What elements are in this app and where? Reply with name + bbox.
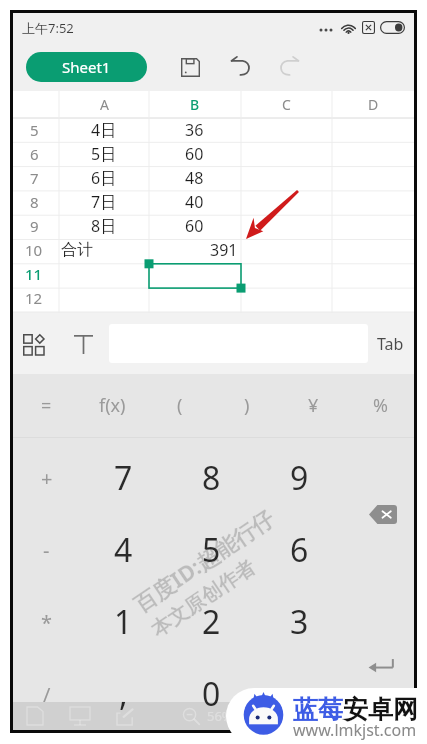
- staticText: 上午7:52: [22, 19, 74, 37]
- button[interactable]: %: [347, 374, 414, 437]
- staticText: Sheet1: [62, 57, 111, 77]
- staticText: (: [177, 393, 183, 418]
- button[interactable]: 3: [255, 586, 343, 658]
- button[interactable]: 8: [167, 442, 255, 514]
- button[interactable]: B: [149, 91, 241, 118]
- button[interactable]: Undo: [223, 50, 257, 84]
- staticText: ): [244, 393, 250, 418]
- button[interactable]: ,: [80, 658, 167, 730]
- staticText: 391: [210, 239, 238, 261]
- staticText: 5: [202, 528, 221, 572]
- staticText: 7: [30, 168, 39, 188]
- button[interactable]: =: [13, 374, 79, 437]
- button[interactable]: 1: [80, 586, 167, 658]
- staticText: 6: [30, 144, 39, 164]
- staticText: B: [190, 95, 200, 114]
- staticText: -: [43, 537, 50, 564]
- staticText: 4日: [91, 119, 117, 141]
- button[interactable]: Sheet1: [26, 52, 147, 82]
- staticText: ¥: [308, 393, 319, 418]
- button[interactable]: Backspace: [343, 442, 414, 586]
- button[interactable]: f(x): [79, 374, 146, 437]
- button[interactable]: Redo: [273, 50, 307, 84]
- button[interactable]: /: [13, 658, 80, 730]
- staticText: 8日: [91, 215, 117, 237]
- button[interactable]: 9: [255, 442, 343, 514]
- staticText: www.lmkjst.com: [293, 719, 417, 741]
- staticText: Tab: [377, 333, 404, 355]
- staticText: 安卓网: [343, 694, 418, 725]
- staticText: D: [368, 95, 379, 114]
- staticText: 2: [202, 600, 221, 644]
- staticText: A: [100, 95, 109, 114]
- staticText: C: [282, 95, 291, 114]
- button[interactable]: Text format: [68, 329, 98, 359]
- staticText: 6: [290, 528, 309, 572]
- staticText: 蓝莓: [293, 694, 343, 725]
- staticText: 9: [290, 456, 309, 500]
- button[interactable]: 0: [167, 658, 255, 730]
- staticText: 3: [290, 600, 309, 644]
- staticText: 本文原创作者: [146, 555, 260, 642]
- staticText: 60: [185, 215, 204, 237]
- button[interactable]: Enter: [343, 586, 414, 730]
- staticText: 4: [114, 528, 133, 572]
- staticText: *: [41, 609, 53, 636]
- button[interactable]: 7: [80, 442, 167, 514]
- button[interactable]: *: [13, 586, 80, 658]
- button[interactable]: C: [241, 91, 332, 118]
- staticText: 7: [114, 456, 133, 500]
- staticText: .: [295, 672, 304, 716]
- button[interactable]: ): [213, 374, 280, 437]
- button[interactable]: Save: [173, 50, 207, 84]
- staticText: 5日: [91, 143, 117, 165]
- staticText: =: [41, 393, 52, 418]
- staticText: ,: [119, 672, 128, 716]
- button[interactable]: ¥: [280, 374, 347, 437]
- button[interactable]: File: [21, 702, 49, 730]
- staticText: 48: [185, 167, 204, 189]
- button[interactable]: 5: [167, 514, 255, 586]
- staticText: 5: [30, 120, 39, 140]
- staticText: /: [43, 681, 51, 708]
- staticText: f(x): [99, 393, 126, 418]
- button[interactable]: Zoom: [177, 702, 205, 730]
- staticText: 10: [25, 240, 43, 260]
- button[interactable]: Share: [112, 702, 140, 730]
- button[interactable]: +: [13, 442, 80, 514]
- button[interactable]: Cell styles: [18, 329, 48, 359]
- staticText: 11: [25, 264, 43, 284]
- button[interactable]: A: [59, 91, 149, 118]
- button[interactable]: .: [255, 658, 343, 730]
- staticText: 6日: [91, 167, 117, 189]
- staticText: 合计: [61, 240, 93, 260]
- button[interactable]: Projection: [66, 702, 94, 730]
- button[interactable]: (: [146, 374, 213, 437]
- staticText: 1: [114, 600, 133, 644]
- staticText: +: [41, 465, 53, 492]
- button[interactable]: 6: [255, 514, 343, 586]
- staticText: 60: [185, 143, 204, 165]
- staticText: 8: [202, 456, 221, 500]
- button[interactable]: D: [332, 91, 414, 118]
- staticText: 12: [25, 288, 43, 308]
- staticText: 9: [30, 216, 39, 236]
- staticText: %: [373, 393, 388, 418]
- staticText: 40: [185, 191, 204, 213]
- button[interactable]: 4: [80, 514, 167, 586]
- staticText: 56%: [207, 707, 233, 725]
- staticText: 8: [30, 192, 39, 212]
- staticText: 百度ID:超能行仔: [127, 502, 279, 618]
- staticText: 7日: [91, 191, 117, 213]
- staticText: 36: [185, 119, 204, 141]
- staticText: 0: [202, 672, 221, 716]
- button[interactable]: 2: [167, 586, 255, 658]
- button[interactable]: Tab: [377, 333, 404, 355]
